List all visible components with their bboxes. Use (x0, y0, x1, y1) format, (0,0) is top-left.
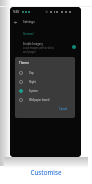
staticText: Night (29, 80, 36, 84)
staticText: Load images with articles and pages (23, 46, 54, 54)
button[interactable]: Wallpaper based (19, 95, 75, 104)
staticText: Settings (23, 20, 35, 24)
button[interactable] (69, 42, 78, 52)
button[interactable]: Night (19, 77, 75, 86)
staticText: Day (29, 71, 34, 75)
staticText: General (23, 32, 34, 36)
staticText: 9:30 (13, 10, 20, 14)
button[interactable]: Customise (30, 168, 62, 176)
button[interactable]: Back (11, 18, 19, 26)
button[interactable]: System (19, 86, 75, 95)
button[interactable]: Cancel (59, 107, 75, 118)
staticText: System (29, 89, 38, 93)
staticText: Enable Imagery (23, 42, 43, 46)
staticText: Wallpaper based (29, 98, 50, 102)
button[interactable]: Day (19, 68, 75, 77)
staticText: Theme (19, 61, 29, 65)
button[interactable]: Enable Imagery (10, 42, 81, 54)
